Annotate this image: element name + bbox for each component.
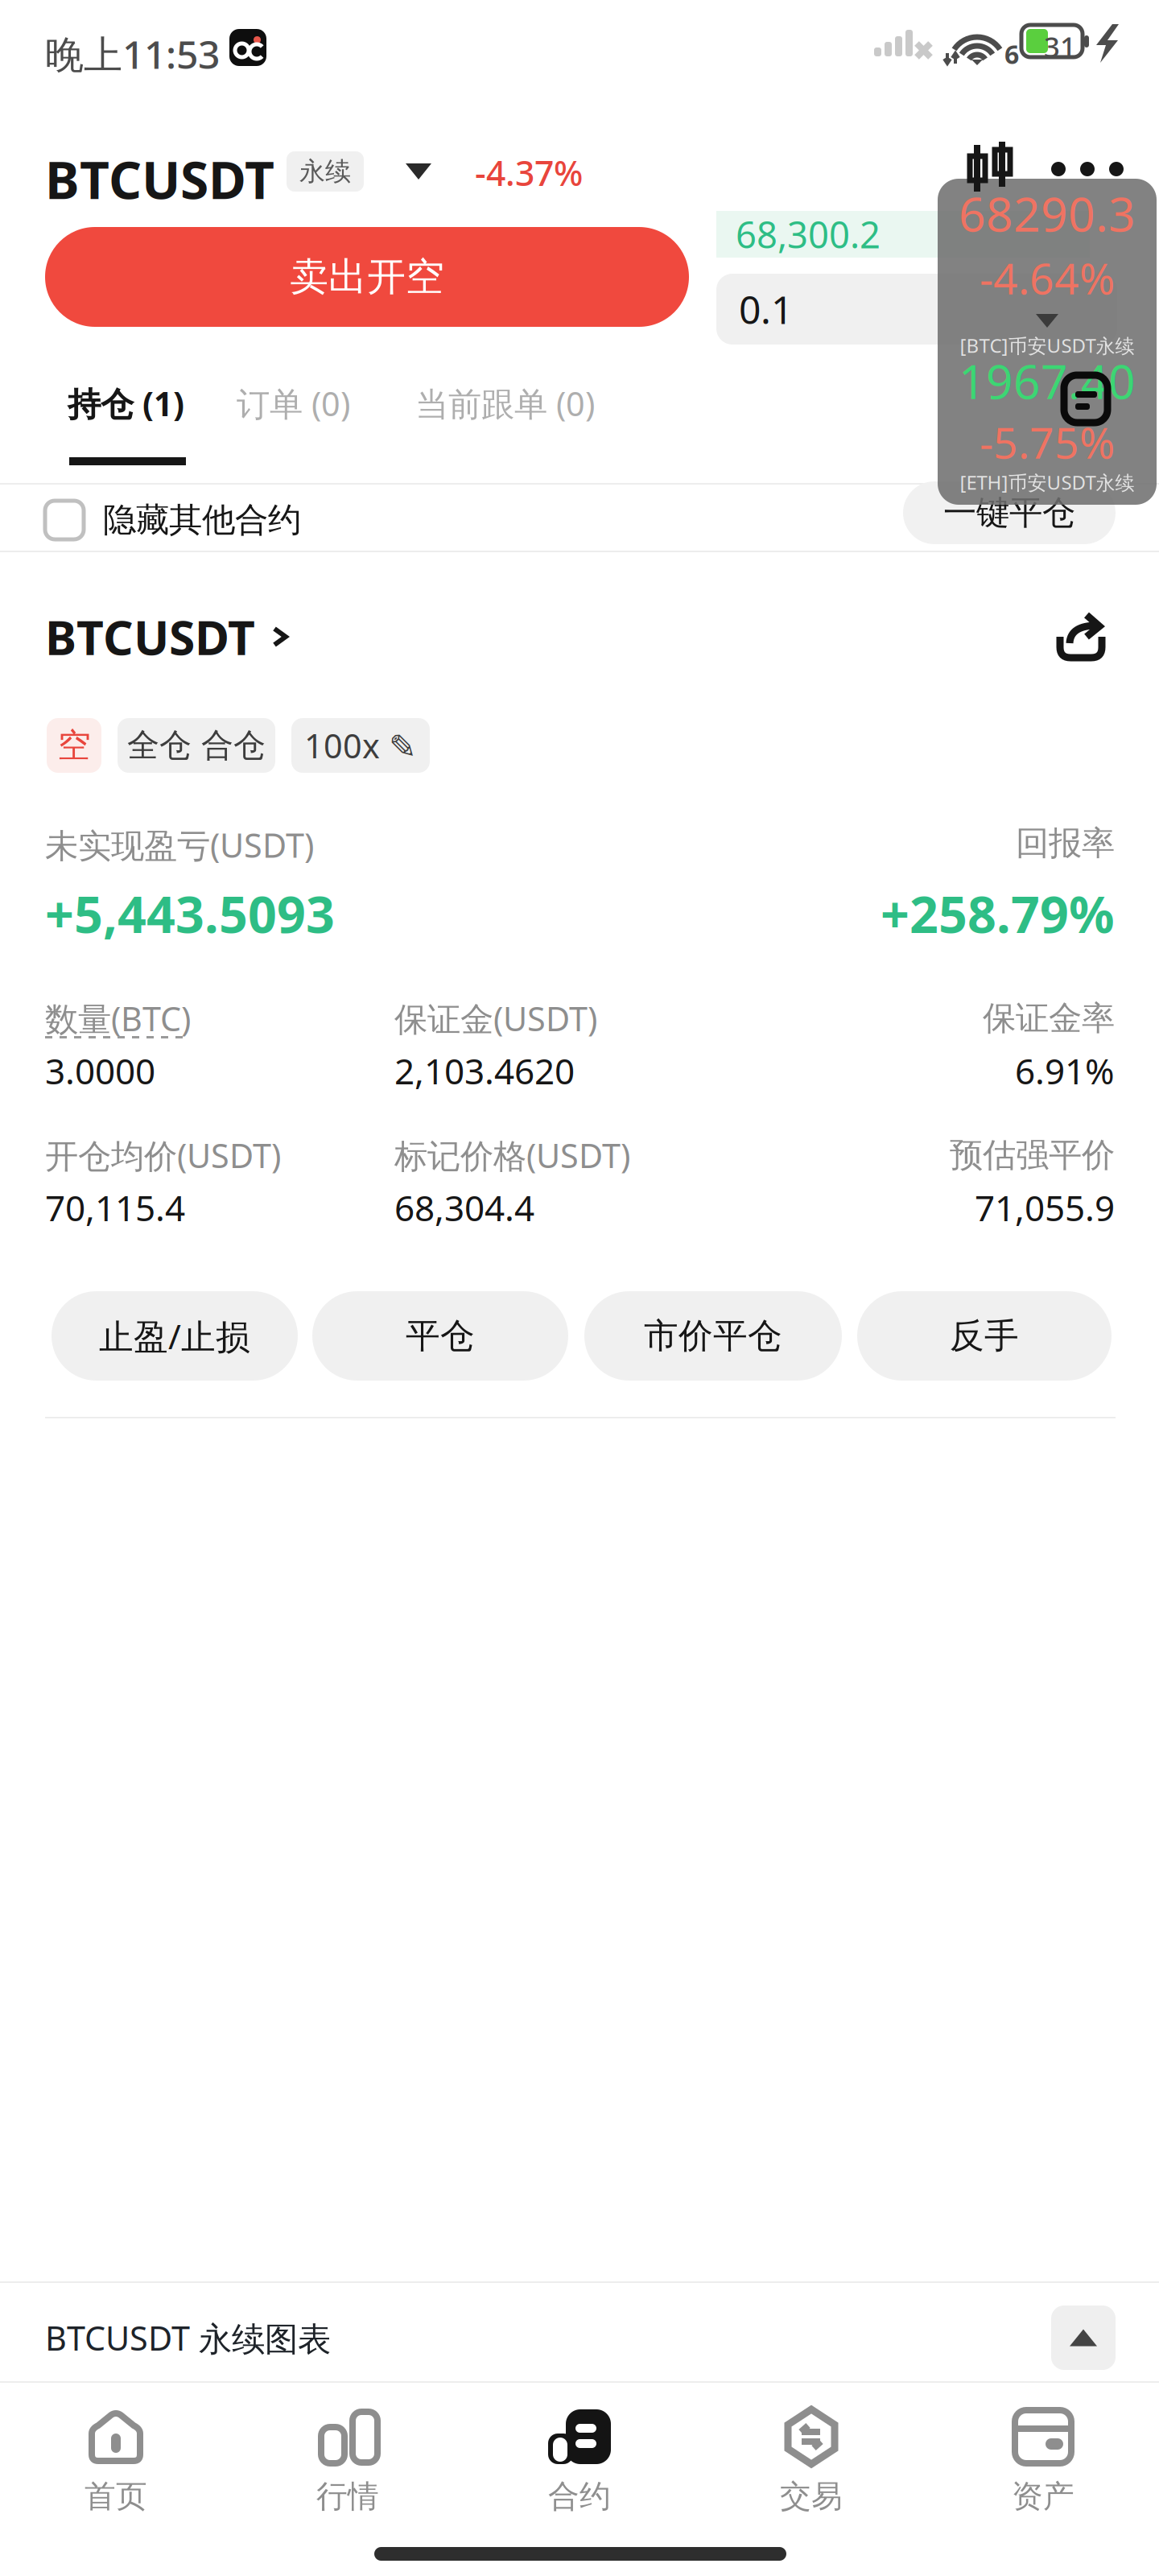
staticText: 市价平仓 [644,1315,782,1357]
staticText: 6 [1004,37,1019,71]
staticText: 68,304.4 [394,1184,534,1231]
staticText: 晚上11:53 [45,28,220,79]
staticText: 31 [1044,28,1076,65]
button[interactable]: BTCUSDT [45,610,295,663]
staticText: 100x ✎ [304,723,417,768]
staticText: 永续 [299,156,351,187]
staticText: 保证金(USDT) [394,996,597,1040]
button[interactable]: 行情 [232,2403,464,2546]
staticText: 68290.3 [959,182,1136,245]
staticText: 持仓 (1) [68,381,184,425]
button[interactable]: 交易 [695,2403,927,2546]
staticText: +5,443.5093 [45,880,335,947]
button[interactable]: 反手 [857,1291,1112,1381]
staticText: 预估强平价 [950,1135,1115,1176]
staticText: 回报率 [1016,823,1115,864]
button[interactable]: 订单 (0) [237,378,350,428]
button[interactable]: 隐藏其他合约 [45,493,301,547]
staticText: 当前跟单 (0) [415,381,595,425]
staticText: BTCUSDT [45,145,274,213]
staticText: 71,055.9 [975,1184,1115,1231]
staticText: 0.1 [739,283,793,335]
staticText: [ETH]币安USDT永续 [960,469,1134,495]
staticText: 卖出开空 [290,253,444,301]
button[interactable]: 持仓 (1) [68,378,184,428]
staticText: 一键平仓 [943,492,1075,533]
button[interactable]: 平仓 [312,1291,568,1381]
staticText: +258.79% [881,880,1115,947]
staticText: 保证金率 [983,998,1115,1039]
staticText: -4.37% [475,150,583,195]
staticText: [BTC]币安USDT永续 [960,332,1134,358]
staticText: 隐藏其他合约 [103,500,301,540]
staticText: 资产 [1012,2477,1074,2515]
button[interactable]: 分享 [1056,612,1106,662]
staticText: 标记价格(USDT) [394,1133,630,1177]
button[interactable]: 资产 [927,2403,1159,2546]
staticText: 全仓 合仓 [127,726,266,765]
button[interactable]: 当前跟单 (0) [415,378,595,428]
staticText: 反手 [950,1315,1019,1357]
button[interactable]: 止盈/止损 [52,1291,298,1381]
staticText: 开仓均价(USDT) [45,1133,281,1177]
staticText: -5.75% [980,413,1115,470]
staticText: -4.64% [980,249,1115,306]
staticText: 交易 [780,2477,843,2515]
staticText: 6.91% [1015,1047,1115,1094]
staticText: 68,300.2 [736,210,881,258]
button[interactable]: BTCUSDT 永续图表 [45,2306,1116,2370]
staticText: 平仓 [406,1315,475,1357]
staticText: 首页 [85,2477,147,2515]
staticText: 2,103.4620 [394,1047,575,1094]
button[interactable]: 卖出开空 [45,227,689,327]
button[interactable]: K线图 [967,142,1013,193]
staticText: 数量(BTC) [45,996,191,1040]
staticText: 行情 [316,2477,379,2515]
staticText: 订单 (0) [237,381,350,425]
staticText: 70,115.4 [45,1184,185,1231]
staticText: 止盈/止损 [99,1313,250,1359]
button[interactable]: 市价平仓 [584,1291,842,1381]
button[interactable]: 合约 [464,2403,695,2546]
staticText: 3.0000 [45,1047,155,1094]
staticText: 未实现盈亏(USDT) [45,823,314,867]
staticText: BTCUSDT [45,605,255,668]
button[interactable]: 首页 [0,2403,232,2546]
staticText: BTCUSDT 永续图表 [45,2316,331,2360]
button[interactable]: 一键平仓 [903,481,1116,544]
staticText: 空 [58,725,91,766]
staticText: 合约 [548,2477,611,2515]
staticText: 1967.40 [959,349,1136,412]
button[interactable]: 更多 [1057,158,1118,180]
